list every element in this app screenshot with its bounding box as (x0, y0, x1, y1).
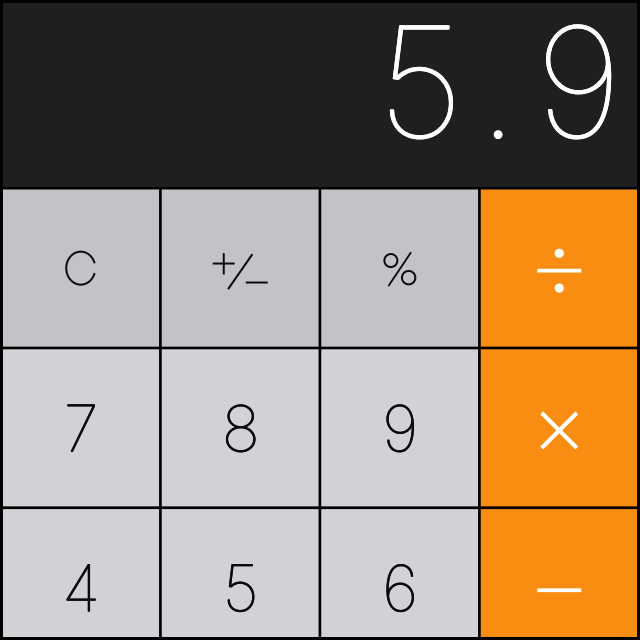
staticText: 5.9 (377, 0, 622, 175)
button[interactable]: 7 (2, 349, 159, 507)
staticText: 8 (222, 389, 260, 467)
button[interactable]: Multiply (481, 349, 638, 507)
button[interactable]: Clear (2, 189, 159, 347)
staticText: 8 (221, 390, 259, 467)
staticText: 8 (222, 390, 260, 467)
staticText: 9 (382, 390, 418, 467)
staticText: 4 (62, 549, 100, 626)
button[interactable]: 5 (162, 509, 319, 640)
staticText: 7 (64, 390, 99, 467)
staticText: 4 (62, 550, 100, 627)
staticText: 5 (223, 550, 259, 627)
button[interactable]: 6 (321, 509, 478, 640)
staticText: 9 (382, 390, 418, 467)
staticText: 5 (222, 550, 258, 627)
staticText: 7 (64, 389, 99, 467)
staticText: 4 (62, 549, 100, 626)
staticText: 5 (223, 549, 259, 626)
staticText: 8 (221, 389, 259, 467)
staticText: 6 (382, 550, 418, 627)
staticText: 7 (63, 389, 98, 467)
button[interactable]: Divide (481, 189, 638, 347)
staticText: 5.9 (378, 0, 623, 174)
staticText: 5.9 (377, 0, 622, 174)
staticText: 9 (382, 389, 418, 467)
button[interactable]: 4 (2, 509, 159, 640)
button[interactable]: 9 (321, 349, 478, 507)
staticText: 5 (222, 549, 258, 626)
staticText: 9 (382, 389, 418, 467)
button[interactable]: Toggle sign (162, 189, 319, 347)
button[interactable]: Subtract (481, 509, 638, 640)
staticText: 4 (62, 550, 100, 627)
staticText: 6 (382, 549, 418, 626)
staticText: 6 (382, 550, 418, 627)
staticText: 5.9 (378, 0, 623, 175)
staticText: 7 (63, 390, 98, 467)
button[interactable]: 8 (162, 349, 319, 507)
button[interactable]: Percent (321, 189, 478, 347)
staticText: 6 (382, 549, 418, 626)
